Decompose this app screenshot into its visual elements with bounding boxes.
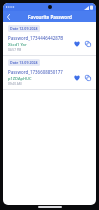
button[interactable]: Date 12.09.2024: [8, 25, 40, 32]
staticText: Password_1736608850177: [8, 69, 63, 75]
staticText: Favourite Password: [28, 14, 72, 20]
button[interactable]: Favourite: [72, 73, 81, 82]
button[interactable]: Copy password: [83, 73, 92, 82]
staticText: Xkcd1 Yar: [8, 42, 27, 47]
staticText: Date 12.09.2024: [10, 26, 38, 31]
staticText: 09:40 AM: [8, 82, 22, 86]
staticText: p1ZDApHUC: [8, 76, 32, 81]
button[interactable]: Date 12.09.2024: [3, 22, 96, 55]
button[interactable]: Date 13.09.2024: [8, 59, 40, 66]
staticText: Password_173444644287B: [8, 35, 64, 41]
button[interactable]: Copy password: [83, 39, 92, 48]
button[interactable]: Date 13.09.2024: [3, 56, 96, 89]
staticText: 04:57 PM: [8, 48, 22, 52]
staticText: Date 13.09.2024: [10, 60, 38, 65]
button[interactable]: Back: [3, 11, 14, 22]
button[interactable]: Favourite: [72, 39, 81, 48]
